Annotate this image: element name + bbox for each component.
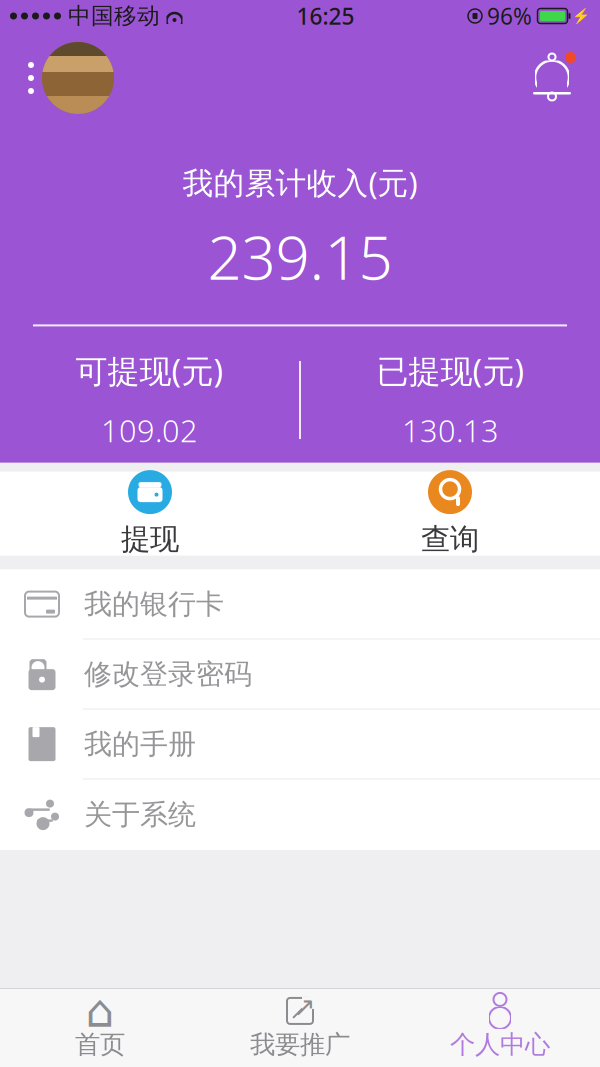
staticText: 130.13 [402, 410, 499, 451]
staticText: 个人中心 [450, 1029, 550, 1060]
button[interactable]: 关于系统 [0, 780, 600, 850]
staticText: ⌂ [85, 985, 114, 1037]
staticText: 查询 [421, 521, 479, 557]
staticText: 关于系统 [84, 797, 196, 832]
button[interactable]: Profile photo [0, 42, 114, 114]
button[interactable]: ⌂ [0, 989, 200, 1067]
staticText: 96% [487, 1, 532, 31]
staticText: 我的累计收入(元) [182, 162, 417, 203]
staticText: 109.02 [101, 410, 198, 451]
staticText: ⚡ [572, 8, 590, 24]
button[interactable]: 查询 [300, 472, 600, 556]
staticText: 我的手册 [84, 727, 196, 761]
button[interactable]: Notifications [528, 52, 600, 104]
staticText: 已提现(元) [376, 349, 524, 392]
button[interactable]: 提现 [0, 472, 300, 556]
button[interactable]: 个人中心 [400, 989, 600, 1067]
staticText: 可提现(元) [75, 349, 223, 392]
staticText: 提现 [121, 521, 179, 557]
staticText: 239.15 [207, 217, 392, 296]
button[interactable]: 修改登录密码 [0, 640, 600, 710]
staticText: 中国移动 [68, 2, 160, 30]
staticText: ↗ [293, 992, 315, 1022]
staticText: 我要推广 [250, 1029, 350, 1060]
button[interactable]: 我的银行卡 [0, 570, 600, 640]
staticText: 首页 [75, 1029, 125, 1060]
staticText: 修改登录密码 [84, 657, 252, 691]
button[interactable]: ↗ [200, 989, 400, 1067]
staticText: 我的银行卡 [84, 587, 224, 621]
staticText: 16:25 [296, 1, 354, 31]
button[interactable]: 我的手册 [0, 710, 600, 780]
